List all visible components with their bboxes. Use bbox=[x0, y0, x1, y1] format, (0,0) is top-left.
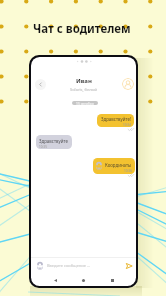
staticText: Чат с водителем bbox=[33, 21, 131, 37]
button[interactable]: Send bbox=[124, 261, 133, 270]
button[interactable]: Здравствуйте! bbox=[97, 114, 134, 127]
button[interactable]: Координаты bbox=[93, 158, 135, 174]
button[interactable]: Здравствуйте bbox=[36, 135, 72, 149]
staticText: Координаты bbox=[105, 162, 132, 168]
button[interactable]: Driver profile bbox=[122, 78, 134, 90]
staticText: 15 октября bbox=[76, 101, 94, 105]
staticText: Здравствуйте! bbox=[101, 116, 131, 122]
staticText: Иван bbox=[76, 77, 92, 85]
staticText: 10:36 bbox=[124, 169, 132, 173]
staticText: Здравствуйте bbox=[39, 138, 68, 144]
staticText: Введите сообщение ... bbox=[47, 263, 124, 268]
button[interactable]: Back bbox=[51, 276, 60, 285]
button[interactable]: Home bbox=[79, 276, 88, 285]
staticText: 10:34 bbox=[123, 123, 131, 127]
staticText: 10:35 bbox=[39, 145, 47, 149]
staticText: Solaris, белый bbox=[70, 87, 98, 92]
button[interactable]: Back bbox=[35, 79, 46, 90]
button[interactable]: Recent apps bbox=[108, 276, 117, 285]
button[interactable]: Attach location bbox=[35, 261, 44, 270]
